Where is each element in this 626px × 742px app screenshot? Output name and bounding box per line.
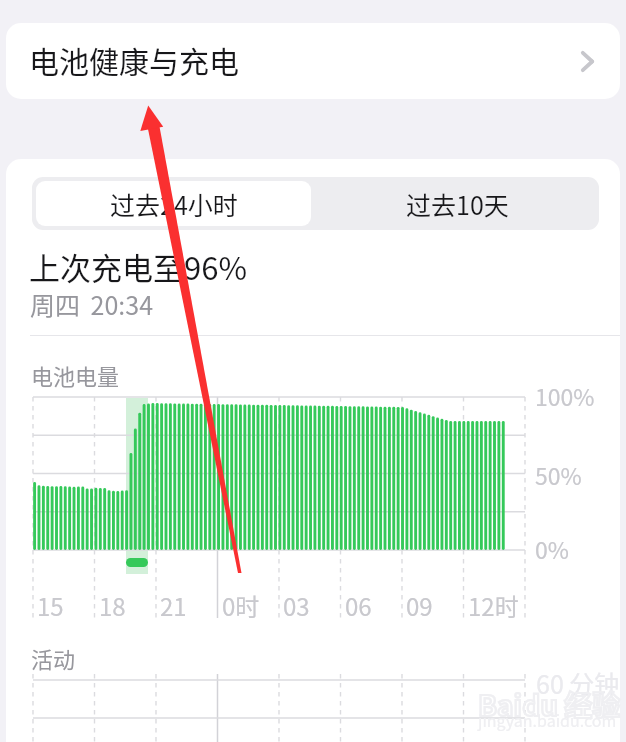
staticText: 06 [345, 588, 372, 623]
staticText: 03 [283, 588, 310, 623]
staticText: 50% [535, 458, 582, 491]
staticText: 15 [37, 588, 64, 623]
staticText: 0时 [222, 588, 260, 623]
staticText: 09 [406, 588, 433, 623]
button[interactable]: 过去10天 [315, 177, 599, 230]
staticText: 电池健康与充电 [29, 38, 239, 81]
staticText: 18 [99, 588, 126, 623]
staticText: 活动 [31, 642, 76, 674]
staticText: 60 分钟 [536, 665, 620, 701]
staticText: 0% [535, 532, 569, 565]
other: Open battery health and charging [581, 51, 594, 72]
staticText: 周四 20:34 [30, 286, 154, 322]
staticText: 100% [535, 379, 595, 412]
staticText: 上次充电至96% [29, 244, 247, 289]
staticText: 过去10天 [406, 186, 509, 222]
staticText: 21 [160, 588, 187, 623]
staticText: 过去24小时 [110, 186, 238, 222]
staticText: 电池电量 [31, 359, 120, 391]
button[interactable]: 过去24小时 [36, 181, 311, 226]
button[interactable]: 电池健康与充电 [6, 23, 620, 99]
staticText: 12时 [468, 588, 519, 623]
